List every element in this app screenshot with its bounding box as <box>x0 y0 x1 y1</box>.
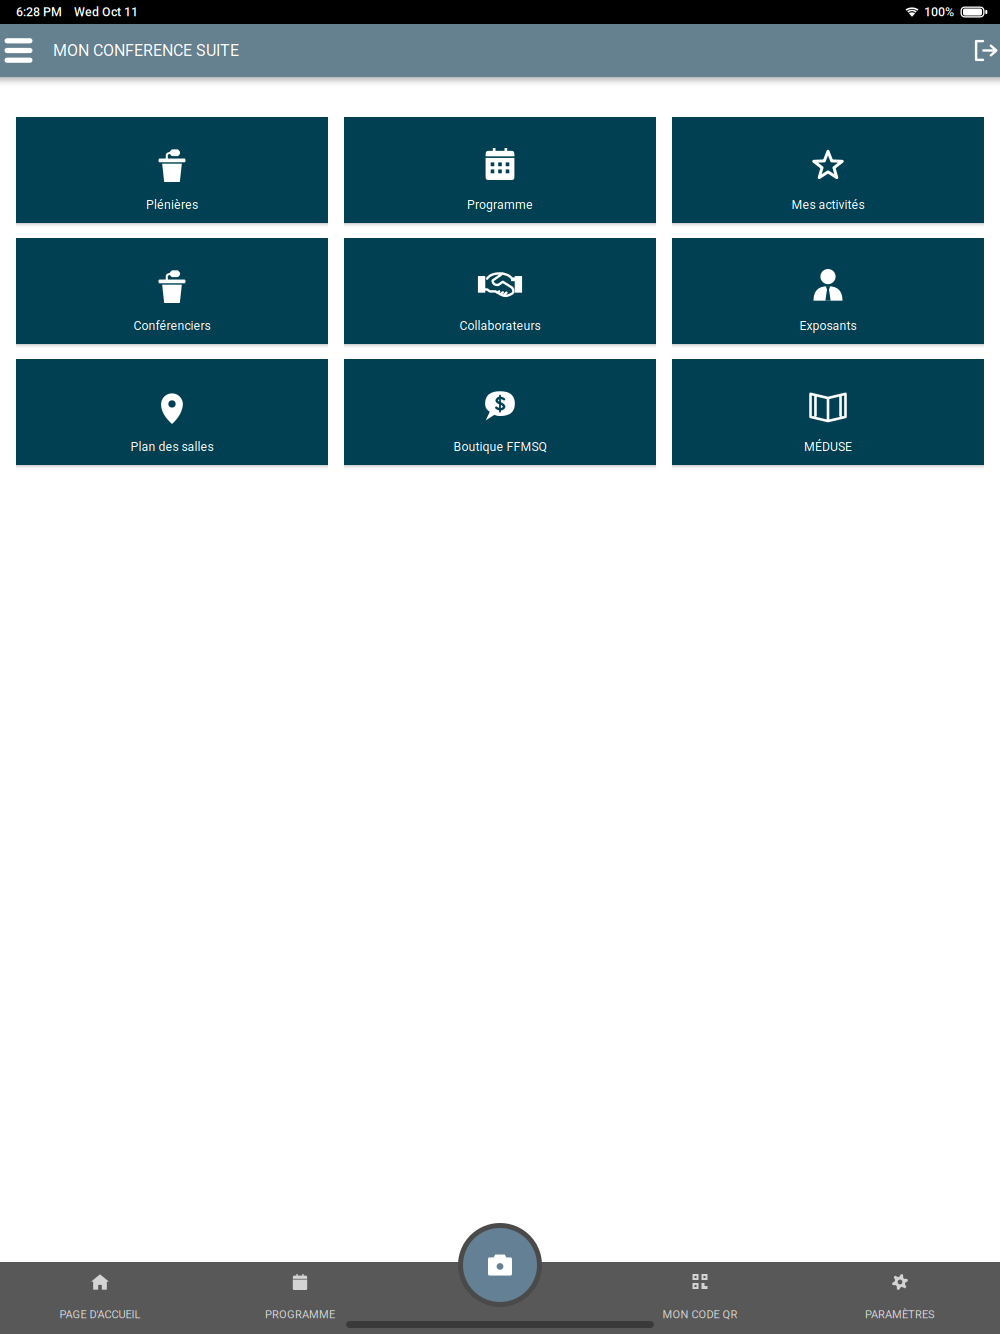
staticText: Exposants <box>799 319 856 333</box>
staticText: Programme <box>467 198 533 212</box>
button[interactable]: Plénières <box>16 117 328 223</box>
staticText: Conférenciers <box>133 319 210 333</box>
button[interactable]: PAGE D'ACCUEIL <box>0 1262 200 1321</box>
button[interactable]: PARAMÈTRES <box>800 1262 1000 1321</box>
staticText: Plan des salles <box>130 440 213 454</box>
button[interactable]: MON CODE QR <box>600 1262 800 1321</box>
button[interactable]: Collaborateurs <box>344 238 656 344</box>
staticText: MON CONFERENCE SUITE <box>53 41 239 60</box>
staticText: 6:28 PM <box>16 5 62 19</box>
button[interactable]: Boutique FFMSQ <box>344 359 656 465</box>
button[interactable]: MÉDUSE <box>672 359 984 465</box>
staticText: Boutique FFMSQ <box>453 440 546 454</box>
staticText: Mes activités <box>791 198 864 212</box>
button[interactable]: Menu <box>0 24 37 77</box>
button[interactable]: Conférenciers <box>16 238 328 344</box>
button[interactable]: Programme <box>344 117 656 223</box>
button[interactable]: Plan des salles <box>16 359 328 465</box>
staticText: PROGRAMME <box>265 1308 335 1321</box>
button[interactable]: Mes activités <box>672 117 984 223</box>
staticText: 100% <box>924 5 954 19</box>
staticText: Wed Oct 11 <box>74 5 138 19</box>
staticText: PAGE D'ACCUEIL <box>59 1308 140 1321</box>
button[interactable]: Exposants <box>672 238 984 344</box>
staticText: Collaborateurs <box>459 319 540 333</box>
staticText: Plénières <box>146 198 198 212</box>
staticText: MÉDUSE <box>804 440 852 454</box>
staticText: MON CODE QR <box>662 1308 737 1321</box>
staticText: PARAMÈTRES <box>865 1308 935 1321</box>
button[interactable]: Scan a code <box>458 1223 542 1307</box>
button[interactable]: Log out <box>972 24 1000 77</box>
button[interactable]: PROGRAMME <box>200 1262 400 1321</box>
